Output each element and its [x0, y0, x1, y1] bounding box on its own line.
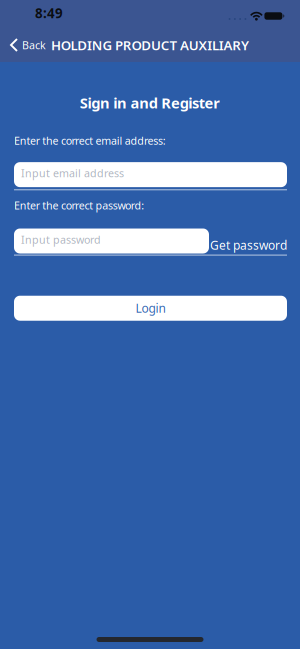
staticText: Sign in and Register: [80, 93, 220, 112]
staticText: Back: [22, 38, 46, 52]
staticText: Enter the correct email address:: [14, 133, 166, 148]
staticText: HOLDING PRODUCT AUXILIARY: [51, 36, 249, 54]
staticText: 8:49: [35, 4, 63, 22]
button[interactable]: Get password: [210, 233, 287, 249]
staticText: Login: [135, 300, 165, 316]
staticText: Enter the correct password:: [14, 198, 144, 212]
button[interactable]: Input password: [14, 228, 209, 253]
staticText: Input password: [21, 232, 101, 247]
staticText: Get password: [210, 237, 287, 253]
button[interactable]: Input email address: [14, 162, 287, 187]
button[interactable]: Login: [14, 296, 287, 321]
staticText: Input email address: [21, 166, 124, 180]
button[interactable]: Back: [0, 38, 46, 52]
